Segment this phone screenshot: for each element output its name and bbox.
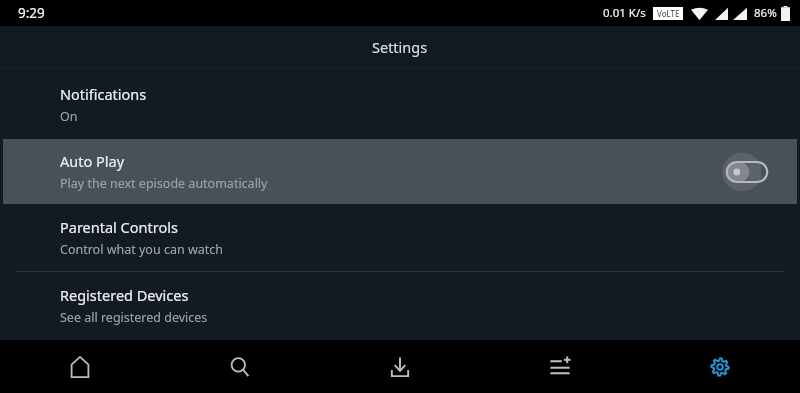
button[interactable]: Downloads: [320, 340, 480, 393]
button[interactable]: Auto Play: [3, 139, 797, 204]
staticText: 0.01 K/s: [603, 5, 646, 21]
button[interactable]: Playlist: [480, 340, 640, 393]
staticText: Auto Play: [60, 151, 125, 171]
button[interactable]: Search: [160, 340, 320, 393]
button[interactable]: Registered Devices: [0, 272, 800, 339]
staticText: Registered Devices: [60, 285, 189, 305]
staticText: Play the next episode automatically: [60, 175, 268, 192]
button[interactable]: Settings: [640, 340, 800, 393]
button[interactable]: Parental Controls: [0, 204, 800, 271]
staticText: See all registered devices: [60, 309, 208, 326]
staticText: On: [60, 108, 78, 125]
staticText: 9:29: [18, 4, 45, 22]
button[interactable]: Home: [0, 340, 160, 393]
staticText: VoLTE: [657, 8, 680, 19]
staticText: Control what you can watch: [60, 241, 223, 258]
staticText: Parental Controls: [60, 217, 178, 237]
staticText: Notifications: [60, 84, 147, 104]
staticText: Settings: [372, 37, 428, 57]
button[interactable]: Auto Play toggle: [719, 144, 775, 200]
staticText: 86%: [754, 5, 777, 21]
button[interactable]: Notifications: [0, 69, 800, 139]
